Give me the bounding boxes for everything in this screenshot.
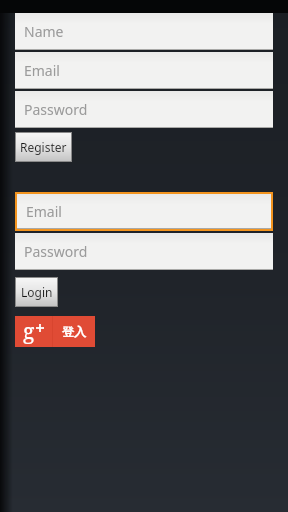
staticText: Register	[20, 139, 67, 155]
staticText: Email	[26, 202, 62, 221]
staticText: Password	[24, 100, 88, 119]
staticText: Login	[21, 284, 53, 300]
button[interactable]: Register	[16, 133, 71, 161]
staticText: g	[23, 317, 35, 346]
staticText: 登入	[62, 324, 86, 339]
button[interactable]: Login	[16, 278, 57, 306]
staticText: Password	[24, 242, 88, 261]
button[interactable]: Name	[15, 13, 273, 50]
button[interactable]: Email	[15, 52, 273, 89]
staticText: Name	[24, 22, 64, 41]
button[interactable]: Email	[15, 192, 273, 231]
button[interactable]: Password	[15, 91, 273, 128]
button[interactable]: Password	[15, 233, 273, 270]
other: Sign in with Google	[15, 316, 52, 347]
staticText: Email	[24, 61, 60, 80]
button[interactable]: Sign in with Google	[15, 316, 95, 347]
